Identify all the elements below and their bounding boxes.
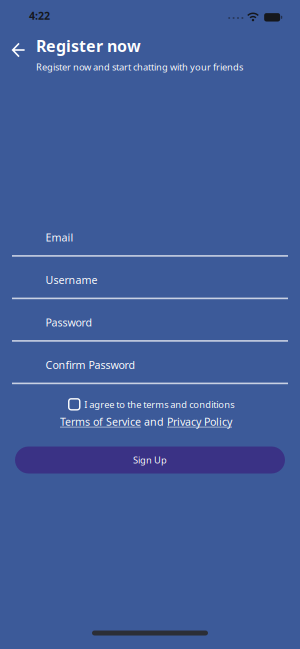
button[interactable]: Privacy Policy (167, 414, 232, 429)
staticText: Register now (36, 35, 141, 56)
button[interactable]: Password (12, 316, 288, 342)
staticText: Password (45, 315, 92, 329)
button[interactable]: Username (12, 273, 288, 299)
button[interactable]: I agree to the terms and conditions (69, 398, 234, 410)
staticText: I agree to the terms and conditions (84, 398, 234, 410)
button[interactable]: Sign Up (15, 446, 285, 473)
staticText: Confirm Password (45, 358, 135, 372)
staticText: Email (45, 230, 73, 244)
staticText: Register now and start chatting with you… (36, 61, 243, 73)
staticText: Privacy Policy (167, 414, 232, 429)
button[interactable] (6, 37, 31, 63)
staticText: Terms of Service (60, 414, 141, 429)
staticText: Sign Up (133, 454, 167, 466)
button[interactable]: Email (12, 231, 288, 257)
button[interactable]: Confirm Password (12, 358, 288, 384)
staticText: Username (45, 273, 97, 287)
staticText: 4:22 (29, 8, 50, 23)
staticText: and (141, 414, 167, 429)
button[interactable]: Terms of Service (60, 414, 141, 429)
